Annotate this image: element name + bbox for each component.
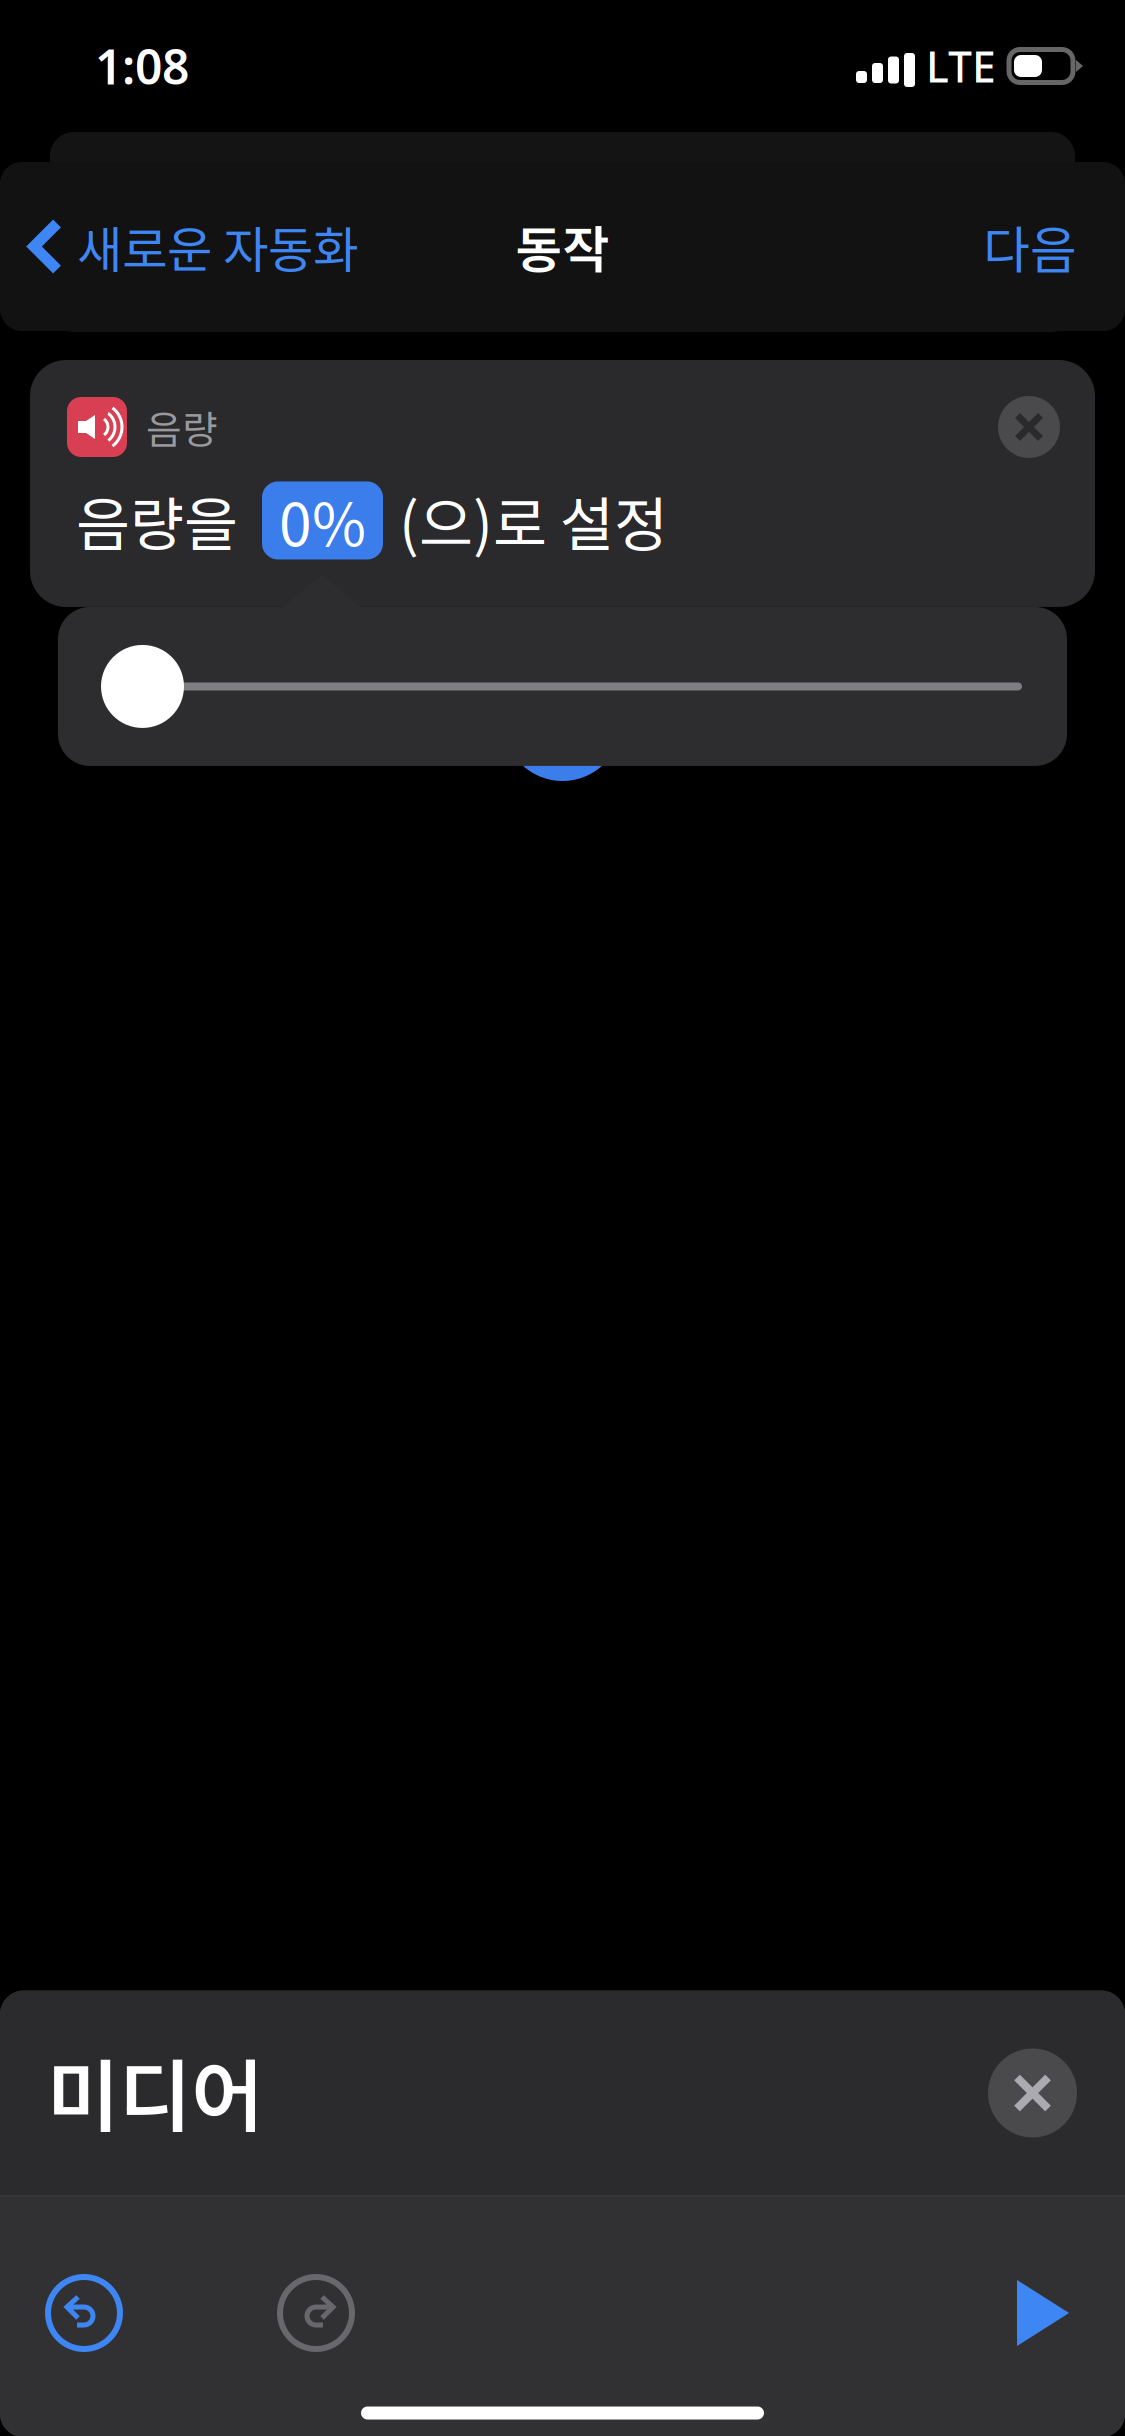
staticText: (으)로 설정: [399, 478, 668, 563]
staticText: 음량을: [76, 478, 238, 563]
staticText: 동작: [515, 210, 609, 283]
staticText: 음량: [146, 399, 218, 455]
button[interactable]: Close: [988, 2048, 1077, 2137]
button[interactable]: 다음: [959, 188, 1125, 305]
staticText: LTE: [926, 38, 996, 94]
staticText: 미디어: [47, 2034, 263, 2148]
button[interactable]: Undo: [28, 2257, 140, 2369]
staticText: 새로운 자동화: [77, 211, 358, 282]
button[interactable]: 0%: [262, 481, 383, 559]
staticText: 다음: [983, 210, 1077, 283]
staticText: 0%: [279, 478, 366, 563]
button[interactable]: 새로운 자동화: [0, 189, 376, 304]
button[interactable]: Remove action: [998, 396, 1060, 458]
button[interactable]: Redo: [260, 2257, 372, 2369]
staticText: 1:08: [95, 34, 189, 98]
button[interactable]: Run: [991, 2260, 1095, 2366]
